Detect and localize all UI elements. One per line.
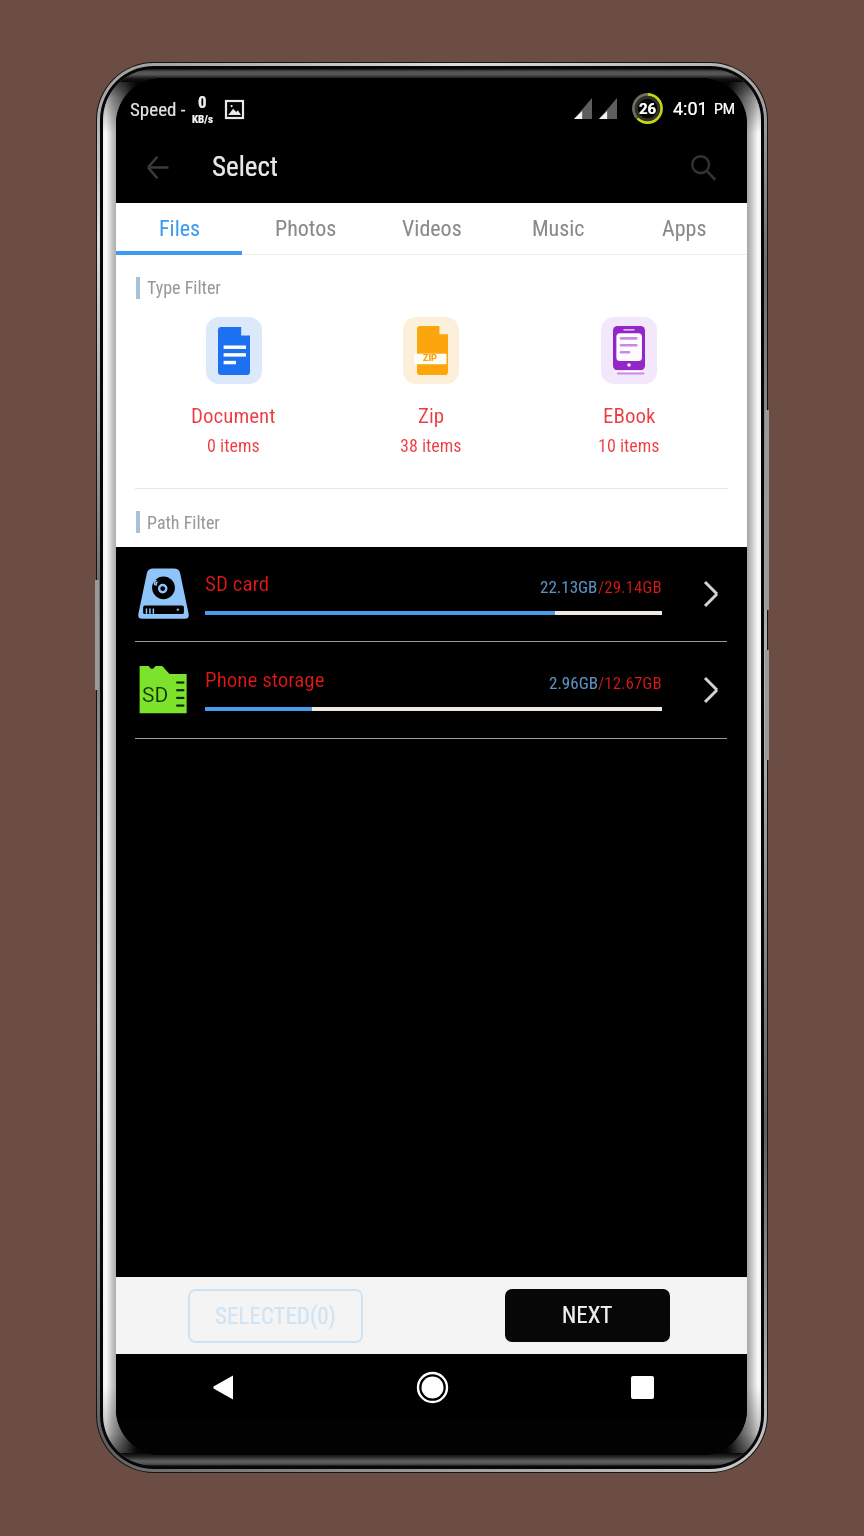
button[interactable]: SELECTED(0) [188, 1289, 363, 1343]
button[interactable]: ZIP [332, 312, 530, 456]
staticText: 0 [198, 92, 207, 112]
staticText: Zip [418, 404, 445, 429]
button[interactable]: Apps [621, 203, 747, 255]
staticText: Videos [402, 216, 462, 242]
staticText: Document [191, 404, 276, 429]
button[interactable]: Document [135, 312, 332, 456]
staticText: EBook [603, 404, 656, 429]
staticText: Apps [662, 216, 707, 242]
staticText: Files [159, 216, 201, 242]
staticText: SD card [205, 572, 270, 597]
staticText: ZIP [423, 353, 437, 364]
staticText: SD [142, 683, 169, 708]
button[interactable]: Search [679, 143, 729, 193]
staticText: 2.96GB [549, 673, 598, 693]
staticText: /29.14GB [598, 577, 662, 597]
staticText: Photos [275, 216, 337, 242]
staticText: 26 [639, 100, 657, 118]
button[interactable]: NEXT [505, 1289, 670, 1342]
staticText: SELECTED(0) [215, 1303, 336, 1330]
button[interactable]: Videos [369, 203, 495, 255]
staticText: 22.13GB [540, 577, 598, 597]
staticText: Phone storage [205, 668, 325, 693]
button[interactable]: Files [116, 203, 243, 255]
button[interactable]: SD card [116, 547, 747, 641]
staticText: Select [212, 151, 278, 183]
staticText: 0 items [207, 435, 260, 456]
staticText: Speed - [130, 98, 186, 120]
button[interactable]: Photos [243, 203, 369, 255]
button[interactable]: Music [495, 203, 621, 255]
staticText: Music [532, 216, 585, 242]
staticText: NEXT [562, 1302, 613, 1329]
staticText: 38 items [400, 435, 462, 456]
staticText: Type Filter [147, 277, 221, 298]
staticText: /12.67GB [598, 673, 662, 693]
button[interactable]: Recents [537, 1354, 747, 1421]
button[interactable]: EBook [530, 312, 728, 456]
staticText: KB/s [192, 113, 213, 126]
staticText: Path Filter [147, 512, 220, 533]
staticText: 4:01 [673, 98, 708, 119]
button[interactable]: SD [116, 642, 747, 738]
staticText: PM [714, 101, 736, 117]
button[interactable]: Back [116, 1354, 327, 1421]
button[interactable]: Home [327, 1354, 537, 1421]
button[interactable]: Back [133, 142, 183, 192]
staticText: 10 items [598, 435, 660, 456]
